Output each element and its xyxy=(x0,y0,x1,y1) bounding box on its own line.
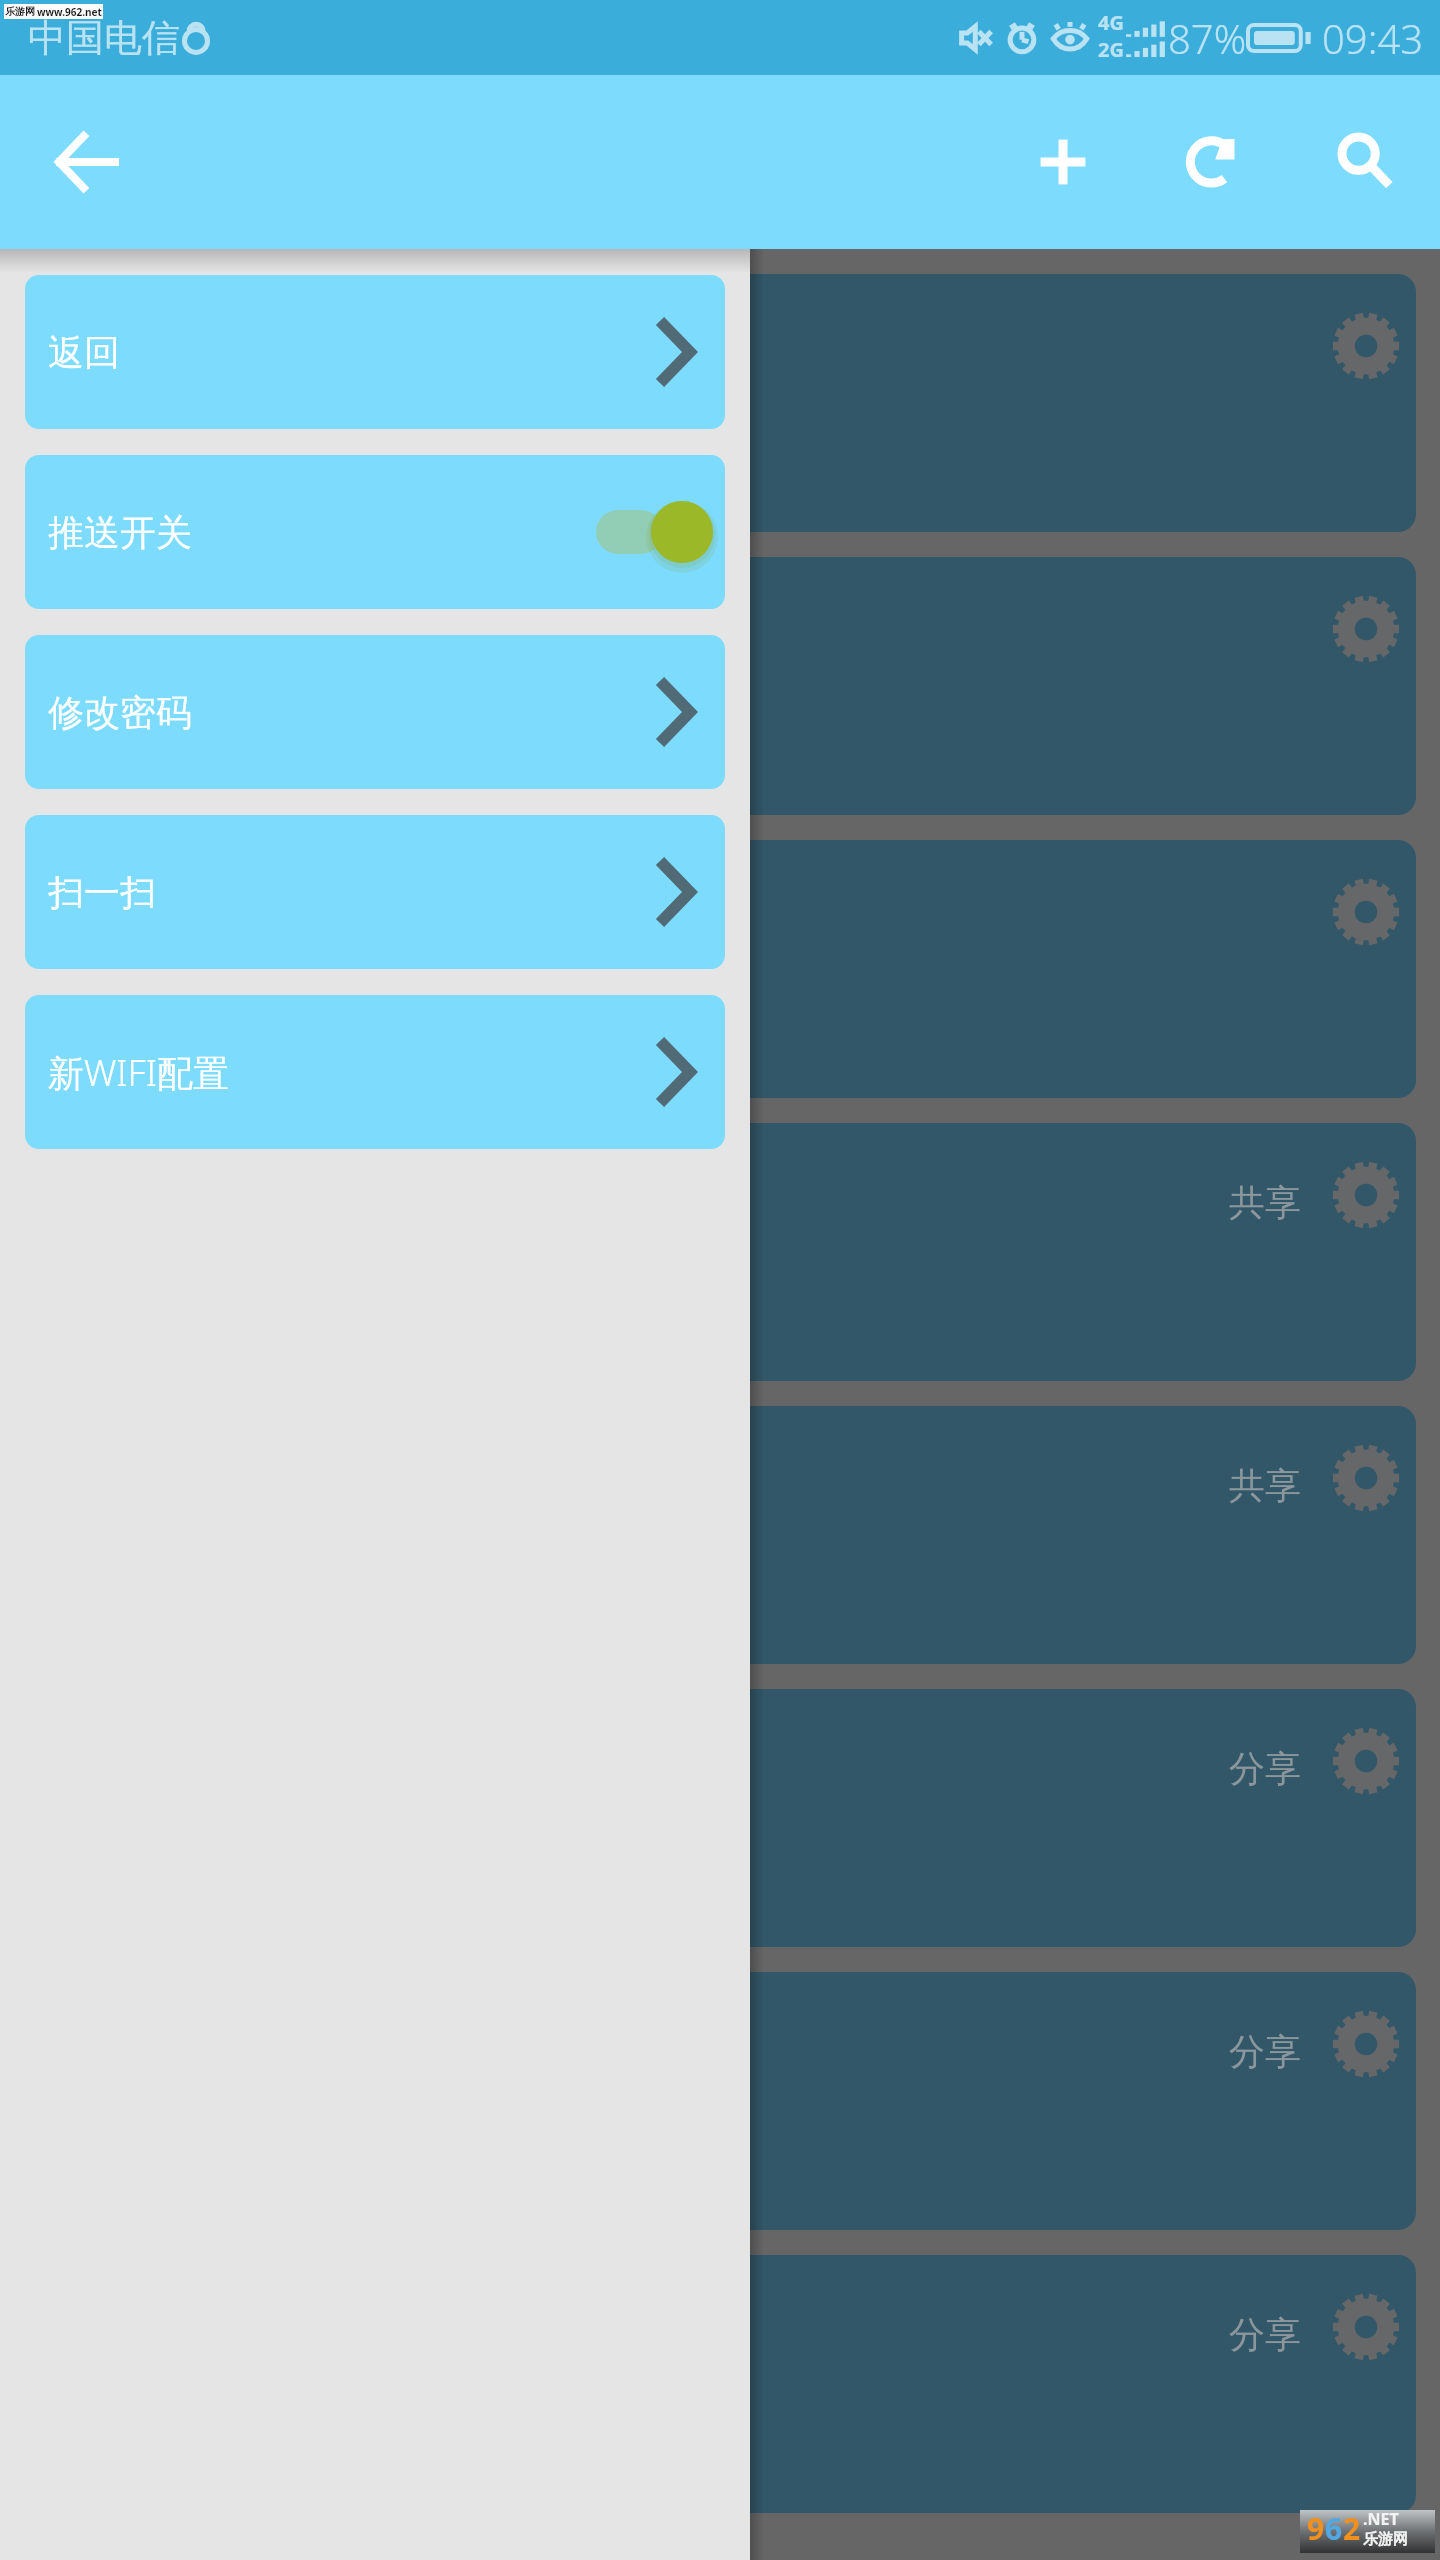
staticText: 分享 xyxy=(1229,2312,1301,2357)
button[interactable]: 分享 xyxy=(0,2255,1416,2513)
staticText: 乐游网 xyxy=(1363,2530,1408,2549)
staticText: 中国电信 xyxy=(28,14,180,62)
staticText: 4G xyxy=(1098,9,1124,36)
staticText: 分享 xyxy=(1229,2029,1301,2074)
button[interactable]: 扫一扫 xyxy=(25,815,725,969)
staticText: 09:43 xyxy=(1322,11,1424,65)
staticText: 返回 xyxy=(48,330,120,375)
button[interactable]: 推送开关 xyxy=(25,455,725,609)
staticText: 87% xyxy=(1168,11,1247,65)
staticText: 2G xyxy=(1098,36,1124,63)
button[interactable]: 返回 xyxy=(25,275,725,429)
button[interactable] xyxy=(0,274,1416,532)
staticText: 共享 xyxy=(1229,1463,1301,1508)
button[interactable]: 修改密码 xyxy=(25,635,725,789)
button[interactable]: 共享 xyxy=(0,1123,1416,1381)
staticText: 新WIFI配置 xyxy=(48,1048,229,1097)
button[interactable]: 新WIFI配置 xyxy=(25,995,725,1149)
button[interactable]: Back xyxy=(26,102,146,222)
staticText: 推送开关 xyxy=(48,510,192,555)
staticText: 扫一扫 xyxy=(48,870,156,915)
staticText: 修改密码 xyxy=(48,690,192,735)
staticText: www.962.net xyxy=(37,5,102,19)
button[interactable]: 分享 xyxy=(0,1972,1416,2230)
staticText: 9 xyxy=(1307,2508,1325,2549)
button[interactable] xyxy=(0,557,1416,815)
button[interactable]: Refresh xyxy=(1138,75,1289,249)
staticText: .NET xyxy=(1363,2508,1399,2530)
button[interactable]: Search xyxy=(1289,75,1440,249)
button[interactable]: Add xyxy=(987,75,1138,249)
button[interactable]: 共享 xyxy=(0,1406,1416,1664)
staticText: 分享 xyxy=(1229,1746,1301,1791)
button[interactable] xyxy=(0,840,1416,1098)
staticText: 6 xyxy=(1325,2508,1343,2549)
button[interactable]: 分享 xyxy=(0,1689,1416,1947)
staticText: 2 xyxy=(1343,2508,1361,2549)
staticText: 乐游网 xyxy=(5,5,35,18)
staticText: 共享 xyxy=(1229,1180,1301,1225)
